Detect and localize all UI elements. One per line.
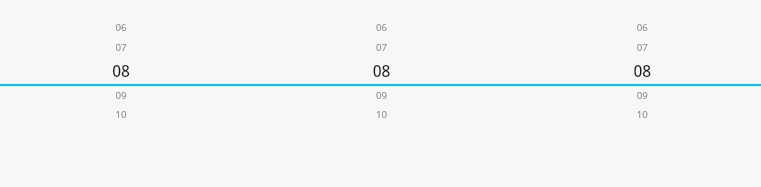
staticText: 06 [375,21,387,34]
button[interactable]: 08 [614,57,670,83]
staticText: 07 [636,41,648,54]
button[interactable]: 10 [357,104,405,124]
button[interactable]: 09 [97,85,145,105]
button[interactable]: 06 [97,17,145,37]
button[interactable]: 08 [93,57,149,83]
staticText: 09 [115,89,127,102]
staticText: 07 [375,41,387,54]
staticText: 08 [633,60,651,81]
button[interactable]: 10 [618,104,666,124]
button[interactable]: 07 [97,37,145,57]
staticText: 10 [375,108,387,121]
staticText: 06 [636,21,648,34]
staticText: 07 [115,41,127,54]
button[interactable]: 08 [353,57,409,83]
staticText: 06 [115,21,127,34]
staticText: 10 [115,108,127,121]
button[interactable]: 07 [357,37,405,57]
button[interactable]: 06 [618,17,666,37]
staticText: 09 [375,89,387,102]
staticText: 08 [372,60,390,81]
button[interactable]: 06 [357,17,405,37]
button[interactable]: 09 [357,85,405,105]
staticText: 08 [112,60,130,81]
button[interactable]: 09 [618,85,666,105]
staticText: 09 [636,89,648,102]
button[interactable]: 10 [97,104,145,124]
staticText: 10 [636,108,648,121]
button[interactable]: 07 [618,37,666,57]
